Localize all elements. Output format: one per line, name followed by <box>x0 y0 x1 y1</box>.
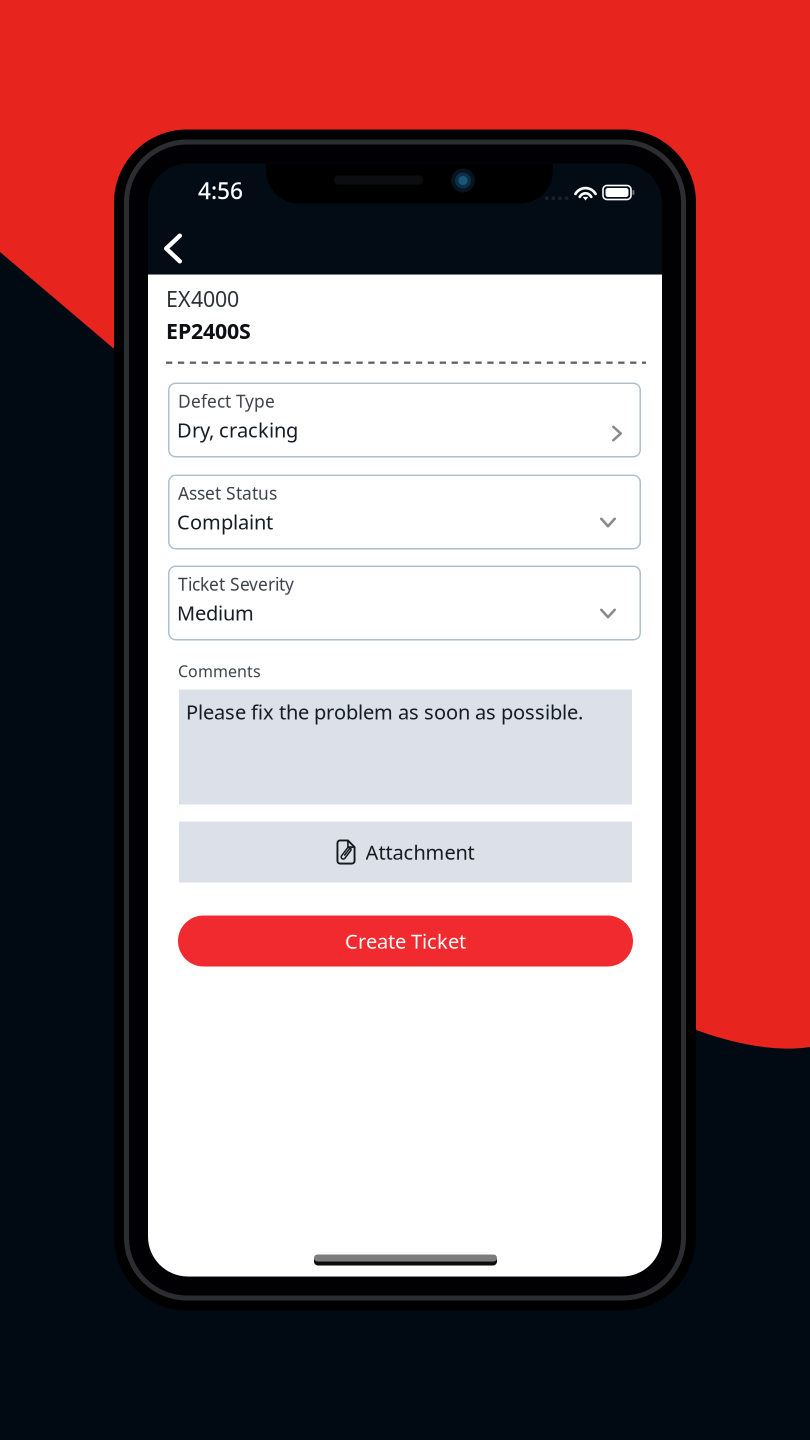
staticText: EP2400S <box>166 316 251 345</box>
staticText: Medium <box>177 599 254 626</box>
staticText: 4:56 <box>198 175 243 206</box>
staticText: Defect Type <box>178 389 275 412</box>
staticText: Please fix the problem as soon as possib… <box>186 698 583 725</box>
staticText: Create Ticket <box>345 928 466 954</box>
button[interactable]: Asset Status <box>168 474 641 549</box>
button[interactable]: Back <box>150 220 196 276</box>
button[interactable]: Create Ticket <box>178 915 633 966</box>
button[interactable]: Attachment <box>179 821 632 882</box>
staticText: Dry, cracking <box>177 416 298 443</box>
staticText: Asset Status <box>178 481 277 504</box>
staticText: EX4000 <box>166 284 239 313</box>
staticText: Complaint <box>177 508 273 535</box>
staticText: Comments <box>178 660 261 682</box>
button[interactable]: Defect Type <box>168 382 641 457</box>
staticText: Attachment <box>365 839 474 865</box>
button[interactable]: Ticket Severity <box>168 565 641 640</box>
staticText: Ticket Severity <box>178 572 294 595</box>
